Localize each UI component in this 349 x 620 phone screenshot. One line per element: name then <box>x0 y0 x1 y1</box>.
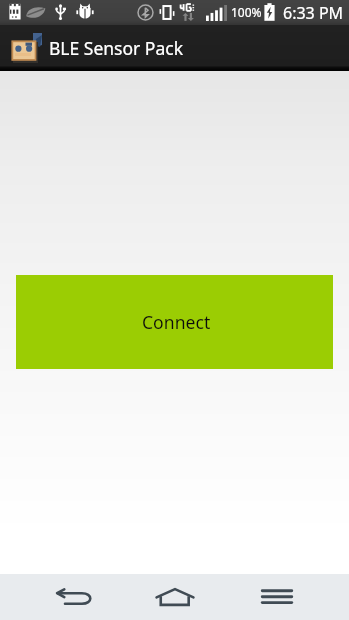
button[interactable]: Home <box>135 574 215 620</box>
staticText: BLE Sensor Pack <box>49 36 184 60</box>
staticText: Connect <box>142 310 211 334</box>
staticText: 100% <box>231 4 262 20</box>
staticText: 6:33 PM <box>283 2 344 24</box>
button[interactable]: BLE Sensor Pack home <box>4 25 48 71</box>
button[interactable]: Connect <box>16 275 333 369</box>
button[interactable]: Back <box>34 574 114 620</box>
button[interactable]: Menu <box>237 574 317 620</box>
